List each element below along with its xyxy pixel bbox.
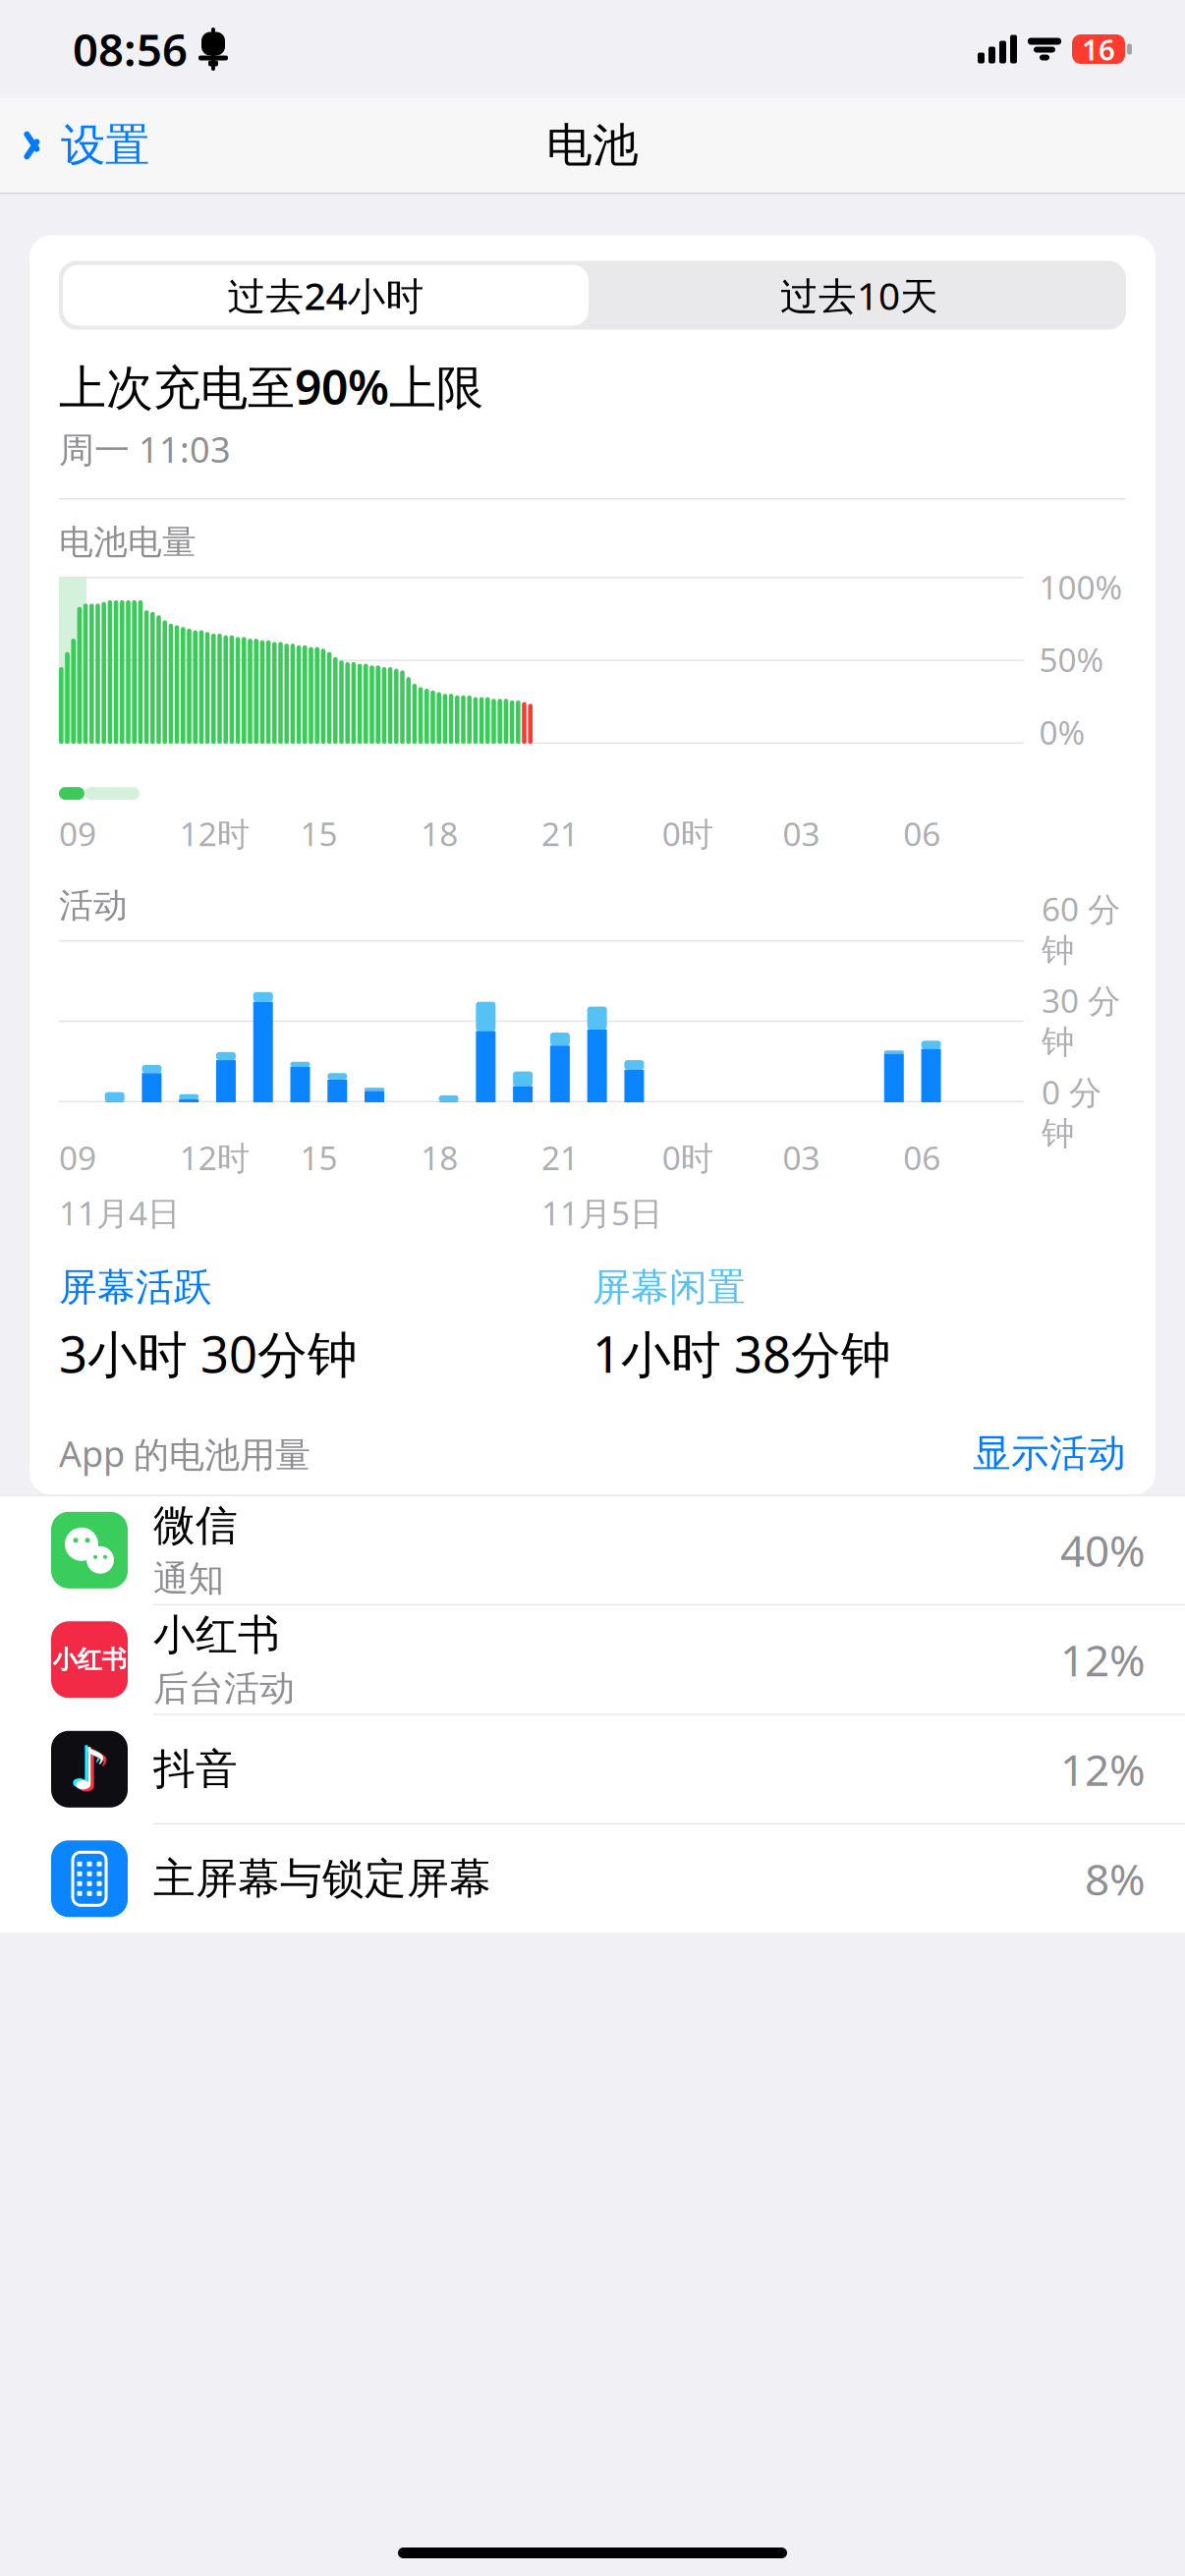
staticText: 21 <box>541 1136 579 1179</box>
staticText: 16 <box>1082 30 1115 68</box>
staticText: 12时 <box>180 1136 249 1179</box>
staticText: ♪ <box>68 1735 105 1800</box>
staticText: 周一 11:03 <box>59 426 231 473</box>
staticText: 0时 <box>662 812 713 855</box>
staticText: 11月4日 <box>59 1191 180 1234</box>
button[interactable]: 主屏幕与锁定屏幕 <box>0 1825 1185 1933</box>
staticText: 06 <box>903 1136 941 1179</box>
staticText: ♪ <box>71 1736 108 1802</box>
staticText: 主屏幕与锁定屏幕 <box>153 1853 491 1904</box>
staticText: 屏幕闲置 <box>592 1264 746 1311</box>
staticText: 上次充电至90%上限 <box>59 355 483 418</box>
staticText: App 的电池用量 <box>59 1430 310 1477</box>
staticText: 11月5日 <box>541 1191 662 1234</box>
button[interactable]: 过去24小时 <box>59 261 592 330</box>
staticText: 60 分钟 <box>1042 887 1120 971</box>
staticText: 小红书 <box>153 1609 280 1661</box>
staticText: 30 分钟 <box>1042 978 1120 1062</box>
staticText: 09 <box>59 812 96 855</box>
button[interactable]: 过去10天 <box>592 261 1126 330</box>
staticText: 50% <box>1039 638 1104 681</box>
staticText: 电池电量 <box>59 521 197 563</box>
button[interactable]: 小红书 <box>0 1606 1185 1715</box>
button[interactable]: 微信 <box>0 1496 1185 1606</box>
staticText: 03 <box>783 1136 820 1179</box>
staticText: 12% <box>1060 1631 1146 1688</box>
staticText: 08:56 <box>73 20 188 79</box>
staticText: 12时 <box>180 812 249 855</box>
staticText: 21 <box>541 812 579 855</box>
staticText: 0% <box>1039 710 1085 754</box>
staticText: 09 <box>59 1136 96 1179</box>
staticText: 过去24小时 <box>227 270 424 320</box>
staticText: 过去10天 <box>780 270 938 320</box>
staticText: 100% <box>1039 565 1123 609</box>
staticText: 8% <box>1085 1850 1146 1907</box>
staticText: 0时 <box>662 1136 713 1179</box>
staticText: 18 <box>421 812 458 855</box>
staticText: 15 <box>300 812 338 855</box>
staticText: 电池 <box>546 117 639 174</box>
staticText: 3小时 30分钟 <box>59 1320 358 1387</box>
button[interactable]: ♪ <box>0 1715 1185 1825</box>
staticText: 微信 <box>153 1500 238 1551</box>
staticText: 活动 <box>59 885 128 926</box>
staticText: 18 <box>421 1136 458 1179</box>
staticText: 设置 <box>61 118 149 173</box>
staticText: 40% <box>1060 1521 1146 1579</box>
staticText: 03 <box>783 812 820 855</box>
staticText: 1小时 38分钟 <box>592 1320 891 1387</box>
staticText: 后台活动 <box>153 1667 295 1710</box>
button[interactable]: 设置 <box>0 104 149 187</box>
staticText: 屏幕活跃 <box>59 1264 212 1311</box>
staticText: 0 分钟 <box>1042 1070 1101 1154</box>
staticText: 12% <box>1060 1741 1146 1798</box>
staticText: 抖音 <box>153 1743 238 1795</box>
staticText: 15 <box>300 1136 338 1179</box>
staticText: 小红书 <box>53 1644 126 1675</box>
staticText: ♪ <box>74 1738 111 1804</box>
button[interactable]: 显示活动 <box>973 1430 1126 1477</box>
staticText: 06 <box>903 812 941 855</box>
staticText: 通知 <box>153 1557 224 1601</box>
staticText: 显示活动 <box>973 1430 1126 1477</box>
